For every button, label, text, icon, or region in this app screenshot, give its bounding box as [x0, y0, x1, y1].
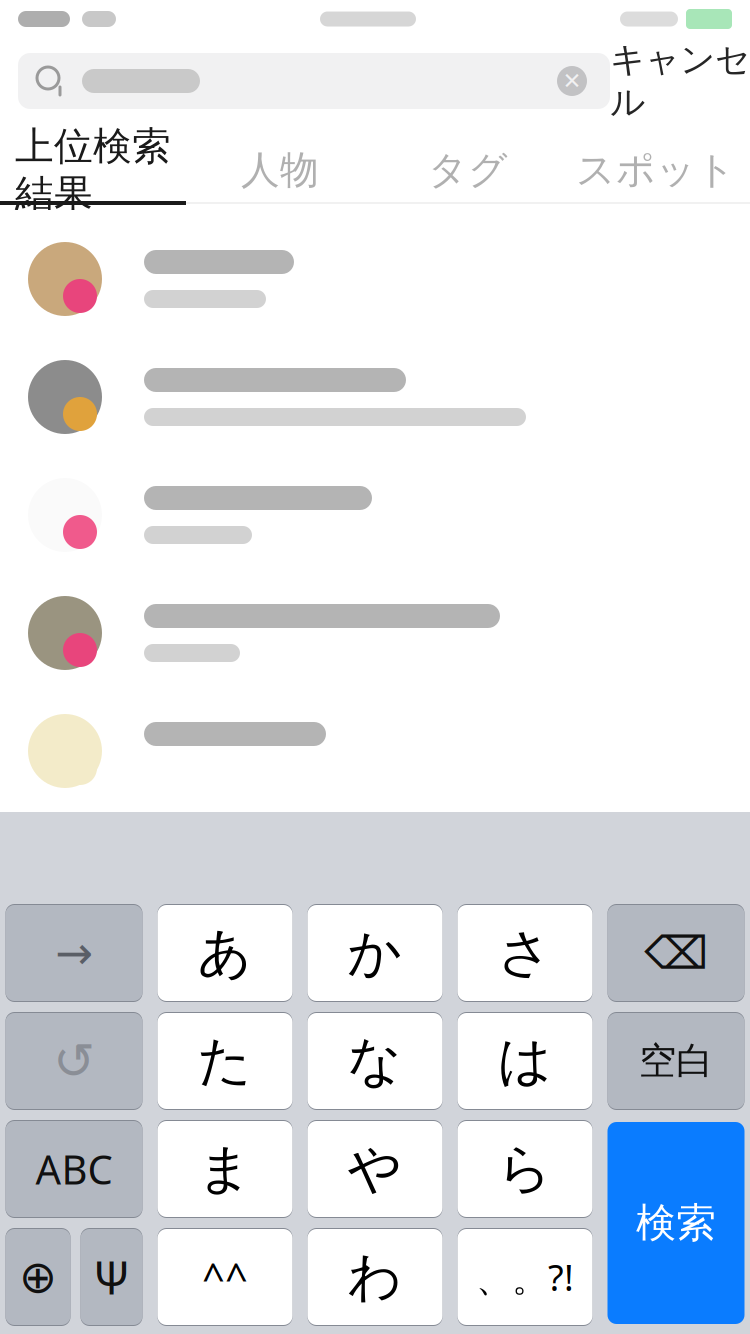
button[interactable]: 削除 — [607, 904, 744, 1002]
staticText: ら — [497, 1136, 552, 1202]
staticText: 、。?! — [476, 1253, 574, 1301]
button[interactable]: か — [307, 904, 442, 1002]
button[interactable]: ら — [457, 1120, 592, 1218]
button[interactable]: は — [457, 1012, 592, 1110]
button[interactable] — [0, 338, 750, 456]
button[interactable]: あ — [157, 904, 292, 1002]
button[interactable]: ABC — [5, 1120, 142, 1218]
button[interactable]: キーボードを切り替え — [5, 1228, 70, 1326]
staticText: → — [55, 927, 93, 979]
staticText: わ — [347, 1244, 402, 1310]
button[interactable]: ま — [157, 1120, 292, 1218]
button[interactable]: 音声入力 — [80, 1228, 142, 1326]
button[interactable]: 検索 — [607, 1122, 744, 1324]
button[interactable]: 空白 — [607, 1012, 744, 1110]
staticText: さ — [497, 920, 552, 986]
button[interactable]: 次候補 — [5, 904, 142, 1002]
staticText: や — [347, 1136, 402, 1202]
staticText: は — [497, 1028, 552, 1094]
button[interactable]: 取り消し — [5, 1012, 142, 1110]
button[interactable]: 上位検索結果 — [0, 139, 186, 201]
staticText: ⌫ — [644, 927, 708, 979]
staticText: あ — [197, 920, 252, 986]
button[interactable] — [0, 574, 750, 692]
staticText: ✕ — [562, 68, 581, 94]
staticText: タグ — [428, 146, 508, 194]
staticText: ^^ — [202, 1250, 248, 1303]
staticText: か — [347, 920, 402, 986]
staticText: な — [347, 1028, 402, 1094]
button[interactable]: キャンセル — [610, 53, 750, 109]
button[interactable] — [0, 220, 750, 338]
button[interactable]: わ — [307, 1228, 442, 1326]
staticText: キャンセル — [610, 38, 750, 124]
button[interactable]: 検索テキストを消去 — [550, 59, 594, 103]
button[interactable]: スポット — [562, 139, 750, 201]
button[interactable]: 人物 — [186, 139, 374, 201]
button[interactable]: ^^ — [157, 1228, 292, 1326]
staticText: Ψ — [93, 1247, 130, 1307]
button[interactable] — [0, 692, 750, 810]
staticText: ↺ — [53, 1032, 95, 1090]
staticText: 人物 — [241, 146, 319, 194]
staticText: た — [197, 1028, 252, 1094]
button[interactable]: や — [307, 1120, 442, 1218]
button[interactable] — [0, 456, 750, 574]
button[interactable]: な — [307, 1012, 442, 1110]
button[interactable]: 、。?! — [457, 1228, 592, 1326]
staticText: ⊕ — [19, 1251, 57, 1303]
staticText: ABC — [35, 1142, 112, 1195]
staticText: スポット — [576, 146, 736, 194]
staticText: 上位検索結果 — [15, 122, 171, 217]
staticText: ま — [197, 1136, 252, 1202]
button[interactable]: た — [157, 1012, 292, 1110]
staticText: 空白 — [639, 1038, 713, 1084]
button[interactable]: タグ — [374, 139, 562, 201]
staticText: 検索 — [636, 1198, 716, 1247]
button[interactable]: さ — [457, 904, 592, 1002]
